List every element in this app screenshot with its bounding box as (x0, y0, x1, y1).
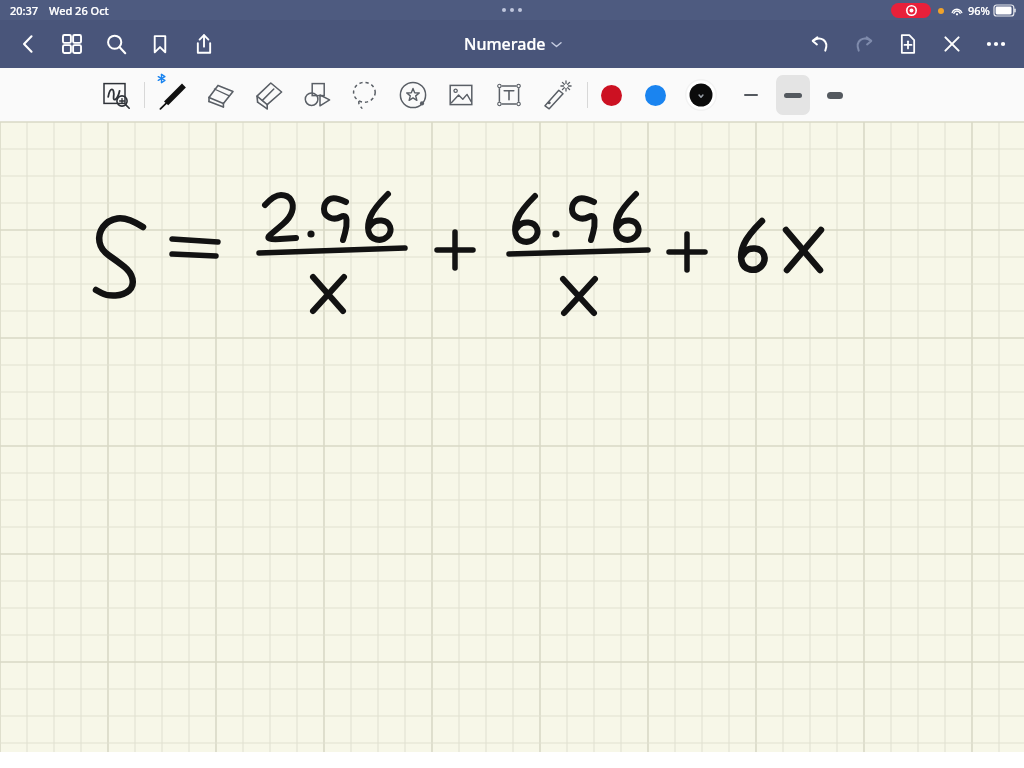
button[interactable]: Close (930, 22, 974, 66)
button[interactable]: Bookmark (138, 22, 182, 66)
button[interactable]: Library (50, 22, 94, 66)
button[interactable]: Lasso (341, 71, 389, 119)
button[interactable]: Highlighter (245, 71, 293, 119)
button[interactable]: Shapes (293, 71, 341, 119)
button[interactable]: Undo (798, 22, 842, 66)
button[interactable]: Numerade (456, 29, 569, 59)
button[interactable]: Stickers (389, 71, 437, 119)
button[interactable]: Stroke width (776, 75, 810, 115)
button[interactable]: Stroke width (734, 75, 768, 115)
button[interactable]: Zoom write (92, 71, 140, 119)
staticText: 20:37 (10, 3, 39, 18)
button[interactable]: More options (974, 22, 1018, 66)
button[interactable]: Pen (149, 71, 197, 119)
button[interactable]: Magic tool (533, 71, 581, 119)
staticText: 96% (968, 3, 990, 18)
button[interactable]: Search (94, 22, 138, 66)
button[interactable]: Stroke width (818, 75, 852, 115)
button[interactable]: Image (437, 71, 485, 119)
button[interactable]: Add page (886, 22, 930, 66)
button[interactable]: Black colour selected (684, 78, 718, 112)
staticText: Numerade (464, 33, 546, 55)
button[interactable]: Text box (485, 71, 533, 119)
button[interactable]: Eraser (197, 71, 245, 119)
button[interactable]: Back (6, 22, 50, 66)
button[interactable]: Share (182, 22, 226, 66)
button[interactable]: Red colour (596, 80, 626, 110)
button[interactable]: Redo (842, 22, 886, 66)
button[interactable]: Blue colour (640, 80, 670, 110)
staticText: Wed 26 Oct (49, 3, 109, 18)
